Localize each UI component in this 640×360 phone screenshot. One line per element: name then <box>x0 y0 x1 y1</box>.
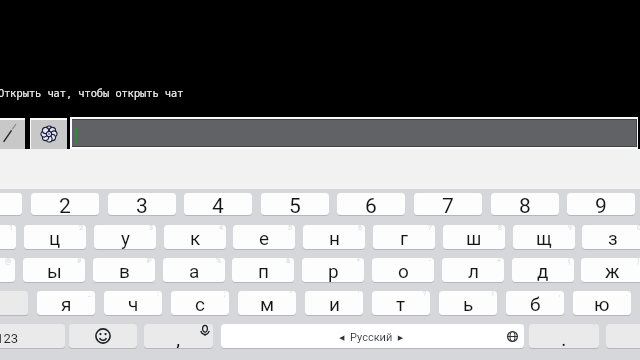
button[interactable]: я <box>37 291 95 315</box>
button[interactable]: , <box>144 324 213 348</box>
staticText: в <box>119 260 130 282</box>
staticText: с <box>195 293 205 315</box>
button[interactable]: ?123 <box>0 324 65 348</box>
button[interactable]: 6 <box>337 193 405 215</box>
button[interactable]: . <box>529 324 599 348</box>
staticText: 8 <box>498 225 502 232</box>
staticText: 1 <box>9 225 13 232</box>
staticText: , <box>559 291 561 298</box>
button[interactable]: ф <box>0 258 15 282</box>
staticText: & <box>286 258 291 265</box>
staticText: ц <box>49 227 61 249</box>
button[interactable]: 3 <box>108 193 176 215</box>
staticText: ? <box>423 291 427 298</box>
button[interactable]: р <box>302 258 364 282</box>
staticText: а <box>189 260 200 282</box>
staticText: 2 <box>59 194 71 215</box>
staticText: 2 <box>79 225 83 232</box>
staticText: н <box>329 227 340 249</box>
staticText: л <box>468 260 479 282</box>
staticText: 7 <box>442 194 454 215</box>
staticText: ь <box>463 293 474 315</box>
button[interactable]: и <box>305 291 363 315</box>
staticText: 0 <box>637 225 640 232</box>
staticText: м <box>260 293 275 315</box>
staticText: е <box>259 227 270 249</box>
staticText: д <box>537 260 549 282</box>
staticText: ш <box>466 227 482 249</box>
staticText: ₽ <box>147 258 152 265</box>
staticText: з <box>608 227 618 249</box>
staticText: о <box>398 260 409 282</box>
button[interactable]: ц <box>24 225 86 249</box>
button[interactable]: к <box>164 225 226 249</box>
button[interactable]: е <box>233 225 295 249</box>
button[interactable]: л <box>442 258 504 282</box>
staticText: ж <box>605 260 620 282</box>
button[interactable]: Draw <box>0 118 25 150</box>
staticText: 5 <box>289 194 301 215</box>
button[interactable]: п <box>232 258 294 282</box>
staticText: * <box>357 258 361 265</box>
button[interactable]: ы <box>23 258 85 282</box>
button[interactable]: з <box>582 225 640 249</box>
button[interactable]: т <box>372 291 430 315</box>
staticText: # <box>77 258 82 265</box>
button[interactable]: в <box>93 258 155 282</box>
button[interactable]: н <box>303 225 365 249</box>
button[interactable]: г <box>373 225 435 249</box>
button[interactable]: 1 <box>0 193 22 215</box>
staticText: . <box>626 291 628 298</box>
staticText: 5 <box>288 225 292 232</box>
button[interactable]: ◂ Русский ▸ <box>221 324 524 348</box>
button[interactable]: 9 <box>567 193 635 215</box>
staticText: ◂ Русский ▸ <box>339 331 404 344</box>
button[interactable]: д <box>512 258 574 282</box>
staticText: 7 <box>428 225 432 232</box>
button[interactable]: ь <box>439 291 497 315</box>
staticText: ' <box>358 291 360 298</box>
button[interactable]: 4 <box>184 193 252 215</box>
other: Change language <box>507 331 518 342</box>
button[interactable]: 5 <box>261 193 329 215</box>
staticText: ( <box>568 258 571 265</box>
button[interactable]: ш <box>443 225 505 249</box>
staticText: 4 <box>212 194 224 215</box>
staticText: 8 <box>519 194 531 215</box>
button[interactable]: б <box>506 291 564 315</box>
button[interactable]: щ <box>513 225 575 249</box>
button[interactable]: а <box>163 258 225 282</box>
staticText: р <box>328 260 339 282</box>
button[interactable]: м <box>238 291 296 315</box>
staticText: к <box>190 227 201 249</box>
button[interactable]: у <box>94 225 156 249</box>
staticText: 6 <box>358 225 362 232</box>
button[interactable]: Stickers <box>30 118 67 150</box>
other: Voice input <box>200 325 210 336</box>
staticText: - <box>429 258 431 265</box>
button[interactable]: 2 <box>31 193 99 215</box>
staticText: , <box>176 327 181 348</box>
staticText: 9 <box>568 225 572 232</box>
staticText: б <box>530 293 541 315</box>
staticText: ; <box>224 291 226 298</box>
staticText: г <box>400 227 408 249</box>
button[interactable]: Emoji <box>69 324 137 348</box>
button[interactable]: й <box>0 225 16 249</box>
staticText: у <box>121 227 130 249</box>
button[interactable] <box>70 117 638 149</box>
button[interactable]: с <box>171 291 229 315</box>
button[interactable]: 7 <box>414 193 482 215</box>
staticText: щ <box>536 227 552 249</box>
other: Emoji <box>95 328 111 344</box>
button[interactable]: ю <box>573 291 631 315</box>
staticText: _ <box>88 291 92 298</box>
staticText: ?123 <box>0 331 19 346</box>
button[interactable]: ж <box>581 258 640 282</box>
staticText: 6 <box>365 194 377 215</box>
button[interactable]: 8 <box>491 193 559 215</box>
button[interactable]: ч <box>104 291 162 315</box>
button[interactable]: о <box>372 258 434 282</box>
